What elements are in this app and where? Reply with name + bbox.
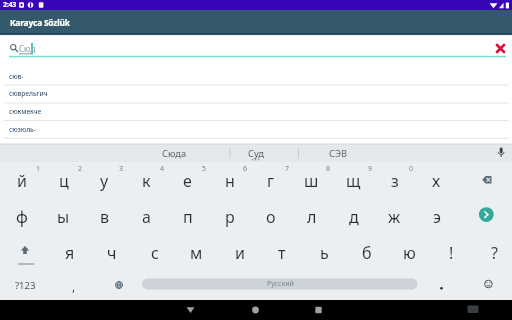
button[interactable]: о [250, 199, 291, 234]
button[interactable]: , [54, 268, 94, 303]
staticText: х [432, 170, 441, 192]
staticText: 8 [326, 164, 331, 174]
button[interactable]: ч [91, 235, 132, 270]
button[interactable] [170, 300, 210, 320]
button[interactable] [490, 38, 512, 58]
button[interactable] [466, 197, 512, 232]
staticText: г [267, 170, 275, 192]
button[interactable]: р [209, 199, 250, 234]
button[interactable]: Русский [142, 277, 418, 291]
button[interactable] [0, 38, 480, 58]
button[interactable]: у [84, 163, 125, 198]
staticText: ! [449, 242, 454, 264]
staticText: ю [403, 242, 416, 264]
staticText: з [391, 170, 399, 192]
staticText: 1 [36, 164, 41, 174]
button[interactable]: л [291, 199, 332, 234]
staticText: т [278, 242, 286, 264]
staticText: сюв- [9, 72, 24, 81]
button[interactable]: с [134, 235, 175, 270]
button[interactable]: м [176, 235, 217, 270]
staticText: 7 [285, 164, 290, 174]
button[interactable]: п [167, 199, 208, 234]
button[interactable]: е [167, 163, 208, 198]
staticText: 5 [202, 164, 207, 174]
button[interactable]: ! [431, 235, 472, 270]
button[interactable]: ш [291, 163, 332, 198]
button[interactable] [235, 300, 275, 320]
button[interactable] [300, 300, 340, 320]
button[interactable]: в [84, 199, 125, 234]
staticText: , [72, 278, 76, 294]
staticText: СЭВ [329, 147, 348, 160]
staticText: ф [16, 206, 28, 228]
staticText: ? [491, 242, 498, 264]
button[interactable] [0, 144, 512, 163]
button[interactable]: й [1, 163, 42, 198]
button[interactable]: Сюда [146, 144, 202, 162]
staticText: б [362, 242, 372, 264]
staticText: п [183, 206, 193, 228]
button[interactable]: ?123 [3, 268, 47, 303]
staticText: м [190, 242, 203, 264]
button[interactable] [420, 266, 460, 301]
button[interactable]: к [126, 163, 167, 198]
button[interactable]: СЭВ [310, 144, 366, 162]
staticText: э [433, 206, 441, 228]
button[interactable]: ? [474, 235, 512, 270]
staticText: 2 [78, 164, 83, 174]
button[interactable] [468, 266, 508, 301]
button[interactable]: и [219, 235, 260, 270]
staticText: р [225, 206, 235, 228]
staticText: д [349, 206, 359, 228]
button[interactable] [4, 231, 48, 266]
staticText: Суд [248, 147, 264, 160]
button[interactable]: з [374, 163, 415, 198]
staticText: ь [320, 242, 329, 264]
button[interactable] [100, 266, 140, 301]
staticText: е [183, 170, 192, 192]
staticText: ч [107, 242, 117, 264]
staticText: ?123 [15, 279, 36, 292]
button[interactable]: Суд [228, 144, 284, 162]
staticText: а [142, 206, 151, 228]
staticText: 3 [119, 164, 124, 174]
staticText: й [17, 170, 27, 192]
button[interactable] [0, 102, 512, 120]
staticText: ы [57, 206, 70, 228]
staticText: к [142, 170, 151, 192]
button[interactable]: т [261, 235, 302, 270]
button[interactable] [466, 162, 512, 197]
staticText: ж [388, 206, 401, 228]
button[interactable]: щ [333, 163, 374, 198]
button[interactable]: я [49, 235, 90, 270]
staticText: ц [59, 170, 69, 192]
staticText: щ [346, 170, 361, 192]
staticText: Сюд [19, 43, 36, 54]
staticText: 0 [409, 164, 414, 174]
staticText: о [266, 206, 276, 228]
button[interactable] [0, 85, 512, 103]
staticText: 6 [243, 164, 248, 174]
button[interactable] [0, 120, 512, 138]
button[interactable]: ф [1, 199, 42, 234]
button[interactable] [0, 67, 512, 85]
button[interactable]: н [209, 163, 250, 198]
button[interactable] [455, 300, 491, 320]
button[interactable]: ы [43, 199, 84, 234]
staticText: н [225, 170, 235, 192]
button[interactable]: а [126, 199, 167, 234]
staticText: Русский [267, 279, 294, 289]
button[interactable]: ж [374, 199, 415, 234]
staticText: и [235, 242, 245, 264]
button[interactable]: ц [43, 163, 84, 198]
button[interactable]: ь [304, 235, 345, 270]
button[interactable]: ю [389, 235, 430, 270]
button[interactable]: б [346, 235, 387, 270]
staticText: 4 [160, 164, 165, 174]
button[interactable]: д [333, 199, 374, 234]
button[interactable]: х [416, 163, 457, 198]
button[interactable]: э [416, 199, 457, 234]
staticText: сюврельгич [9, 89, 48, 98]
button[interactable]: г [250, 163, 291, 198]
